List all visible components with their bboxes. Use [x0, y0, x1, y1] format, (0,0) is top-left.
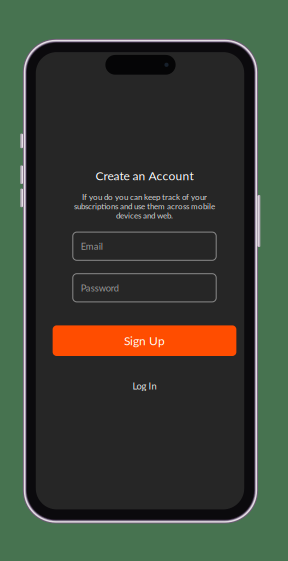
button[interactable]: Password	[73, 274, 216, 302]
staticText: Create an Account	[95, 168, 193, 183]
staticText: devices and web.	[116, 210, 173, 220]
button[interactable]: Email	[73, 232, 216, 260]
staticText: Email	[81, 241, 103, 252]
button[interactable]: Log In	[124, 376, 164, 395]
staticText: Log In	[132, 380, 156, 391]
staticText: If you do you can keep track of your	[82, 192, 207, 202]
button[interactable]: Sign Up	[53, 325, 236, 356]
staticText: Sign Up	[124, 333, 165, 348]
staticText: subscriptions and use them across mobile	[74, 201, 215, 211]
staticText: Password	[81, 282, 119, 293]
